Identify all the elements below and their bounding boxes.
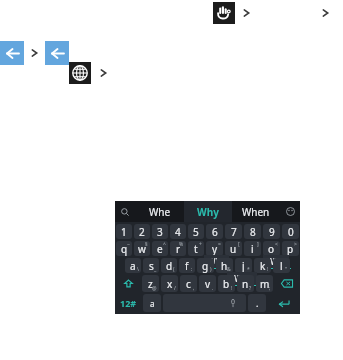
button[interactable]: Backspace <box>275 275 299 292</box>
staticText: o <box>268 242 275 256</box>
button[interactable]: . <box>248 294 266 312</box>
staticText: t <box>194 242 198 256</box>
button[interactable]: y <box>206 241 223 256</box>
staticText: & <box>227 266 231 273</box>
staticText: 5 <box>193 225 199 239</box>
button[interactable]: w <box>134 241 150 256</box>
staticText: x <box>167 277 173 291</box>
button[interactable]: b <box>218 275 235 292</box>
button[interactable]: e <box>152 241 168 256</box>
staticText: c <box>186 277 191 291</box>
staticText: 12# <box>120 297 137 309</box>
button[interactable]: Space <box>163 294 246 312</box>
staticText: _ <box>154 266 157 273</box>
button[interactable]: j <box>235 258 252 273</box>
button[interactable]: 3 <box>152 224 168 239</box>
staticText: [ <box>238 241 240 248</box>
button[interactable]: u <box>225 241 242 256</box>
button[interactable]: a <box>125 258 141 273</box>
staticText: d <box>166 259 173 273</box>
staticText: ( <box>173 266 175 273</box>
staticText: Who <box>267 256 285 267</box>
button[interactable]: 0 <box>282 224 299 239</box>
staticText: ; <box>269 285 271 292</box>
staticText: q <box>121 242 128 256</box>
button[interactable]: n <box>237 275 254 292</box>
button[interactable]: x <box>161 275 178 292</box>
button[interactable]: p <box>282 241 299 256</box>
staticText: 7 <box>231 225 237 239</box>
staticText: b <box>223 277 230 291</box>
staticText: * <box>247 266 250 273</box>
button[interactable]: Switch language <box>143 294 161 312</box>
staticText: 2 <box>139 225 145 239</box>
staticText: 1 <box>121 225 127 239</box>
staticText: i <box>251 242 254 256</box>
staticText: ~ <box>127 241 130 248</box>
button[interactable]: i <box>244 241 261 256</box>
button[interactable]: 4 <box>170 224 186 239</box>
button[interactable]: h <box>216 258 233 273</box>
button[interactable]: q <box>116 241 132 256</box>
staticText: s <box>149 259 154 273</box>
staticText: ^ <box>163 241 166 248</box>
staticText: g <box>202 259 209 273</box>
button[interactable]: o <box>263 241 280 256</box>
button[interactable]: 2 <box>134 224 150 239</box>
button[interactable]: l <box>273 258 290 273</box>
staticText: p <box>287 242 294 256</box>
button[interactable]: k <box>254 258 271 273</box>
staticText: u <box>230 242 237 256</box>
button[interactable]: Gesture typing <box>213 2 235 24</box>
button[interactable]: t <box>188 241 204 256</box>
button[interactable]: m <box>256 275 273 292</box>
staticText: 0 <box>288 225 294 239</box>
staticText: > <box>294 241 297 248</box>
staticText: : <box>191 266 193 273</box>
button[interactable]: 7 <box>225 224 242 239</box>
button[interactable]: 8 <box>244 224 261 239</box>
button[interactable]: Language <box>69 62 91 84</box>
button[interactable]: Why <box>184 201 232 222</box>
button[interactable]: v <box>199 275 216 292</box>
button[interactable]: 1 <box>116 224 132 239</box>
staticText: j <box>242 259 245 273</box>
button[interactable]: 6 <box>206 224 223 239</box>
button[interactable]: When <box>232 201 280 222</box>
staticText: f <box>185 259 189 273</box>
button[interactable]: Back <box>0 41 24 65</box>
staticText: + <box>199 241 202 248</box>
button[interactable]: 5 <box>188 224 204 239</box>
staticText: l <box>280 259 283 273</box>
staticText: When <box>242 205 270 219</box>
staticText: . <box>212 285 214 292</box>
button[interactable]: c <box>180 275 197 292</box>
staticText: Why <box>197 205 219 219</box>
staticText: When <box>231 273 253 284</box>
button[interactable]: 9 <box>263 224 280 239</box>
button[interactable]: Emoji <box>280 201 300 222</box>
button[interactable]: g <box>197 258 214 273</box>
staticText: ] <box>257 241 259 248</box>
button[interactable]: f <box>179 258 195 273</box>
staticText: 6 <box>212 225 218 239</box>
staticText: y <box>212 242 218 256</box>
button[interactable]: Back <box>45 41 69 65</box>
staticText: . <box>256 297 259 309</box>
staticText: 9 <box>269 225 275 239</box>
staticText: 3 <box>157 225 163 239</box>
button[interactable]: z <box>142 275 159 292</box>
button[interactable]: Whe <box>135 201 184 222</box>
button[interactable]: Shift <box>116 275 140 292</box>
staticText: § <box>145 241 148 248</box>
button[interactable]: s <box>143 258 159 273</box>
button[interactable]: Enter <box>268 294 299 312</box>
button[interactable]: 12# <box>116 294 141 312</box>
button[interactable]: d <box>161 258 177 273</box>
button[interactable]: Search <box>115 201 135 222</box>
staticText: m <box>260 277 270 291</box>
staticText: a <box>150 298 155 309</box>
staticText: a <box>130 259 136 273</box>
staticText: h <box>221 259 228 273</box>
button[interactable]: r <box>170 241 186 256</box>
